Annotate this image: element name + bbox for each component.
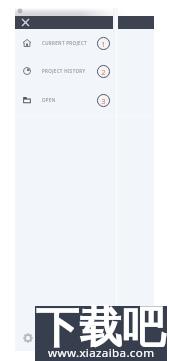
button[interactable]: CURRENT PROJECT <box>15 35 154 51</box>
button[interactable]: OPEN <box>15 92 154 108</box>
staticText: www.xiazaiba.com <box>48 345 155 361</box>
button[interactable]: PROJECT HISTORY <box>15 63 154 79</box>
staticText: OPEN <box>42 97 56 103</box>
staticText: PROJECT HISTORY <box>42 68 86 74</box>
staticText: 3 <box>101 96 106 106</box>
staticText: 2 <box>101 67 106 77</box>
staticText: 1 <box>101 39 106 49</box>
button[interactable]: Close <box>19 16 32 29</box>
staticText: CURRENT PROJECT <box>42 40 87 46</box>
button[interactable]: Settings <box>22 332 34 344</box>
staticText: 下载吧 <box>36 301 168 355</box>
